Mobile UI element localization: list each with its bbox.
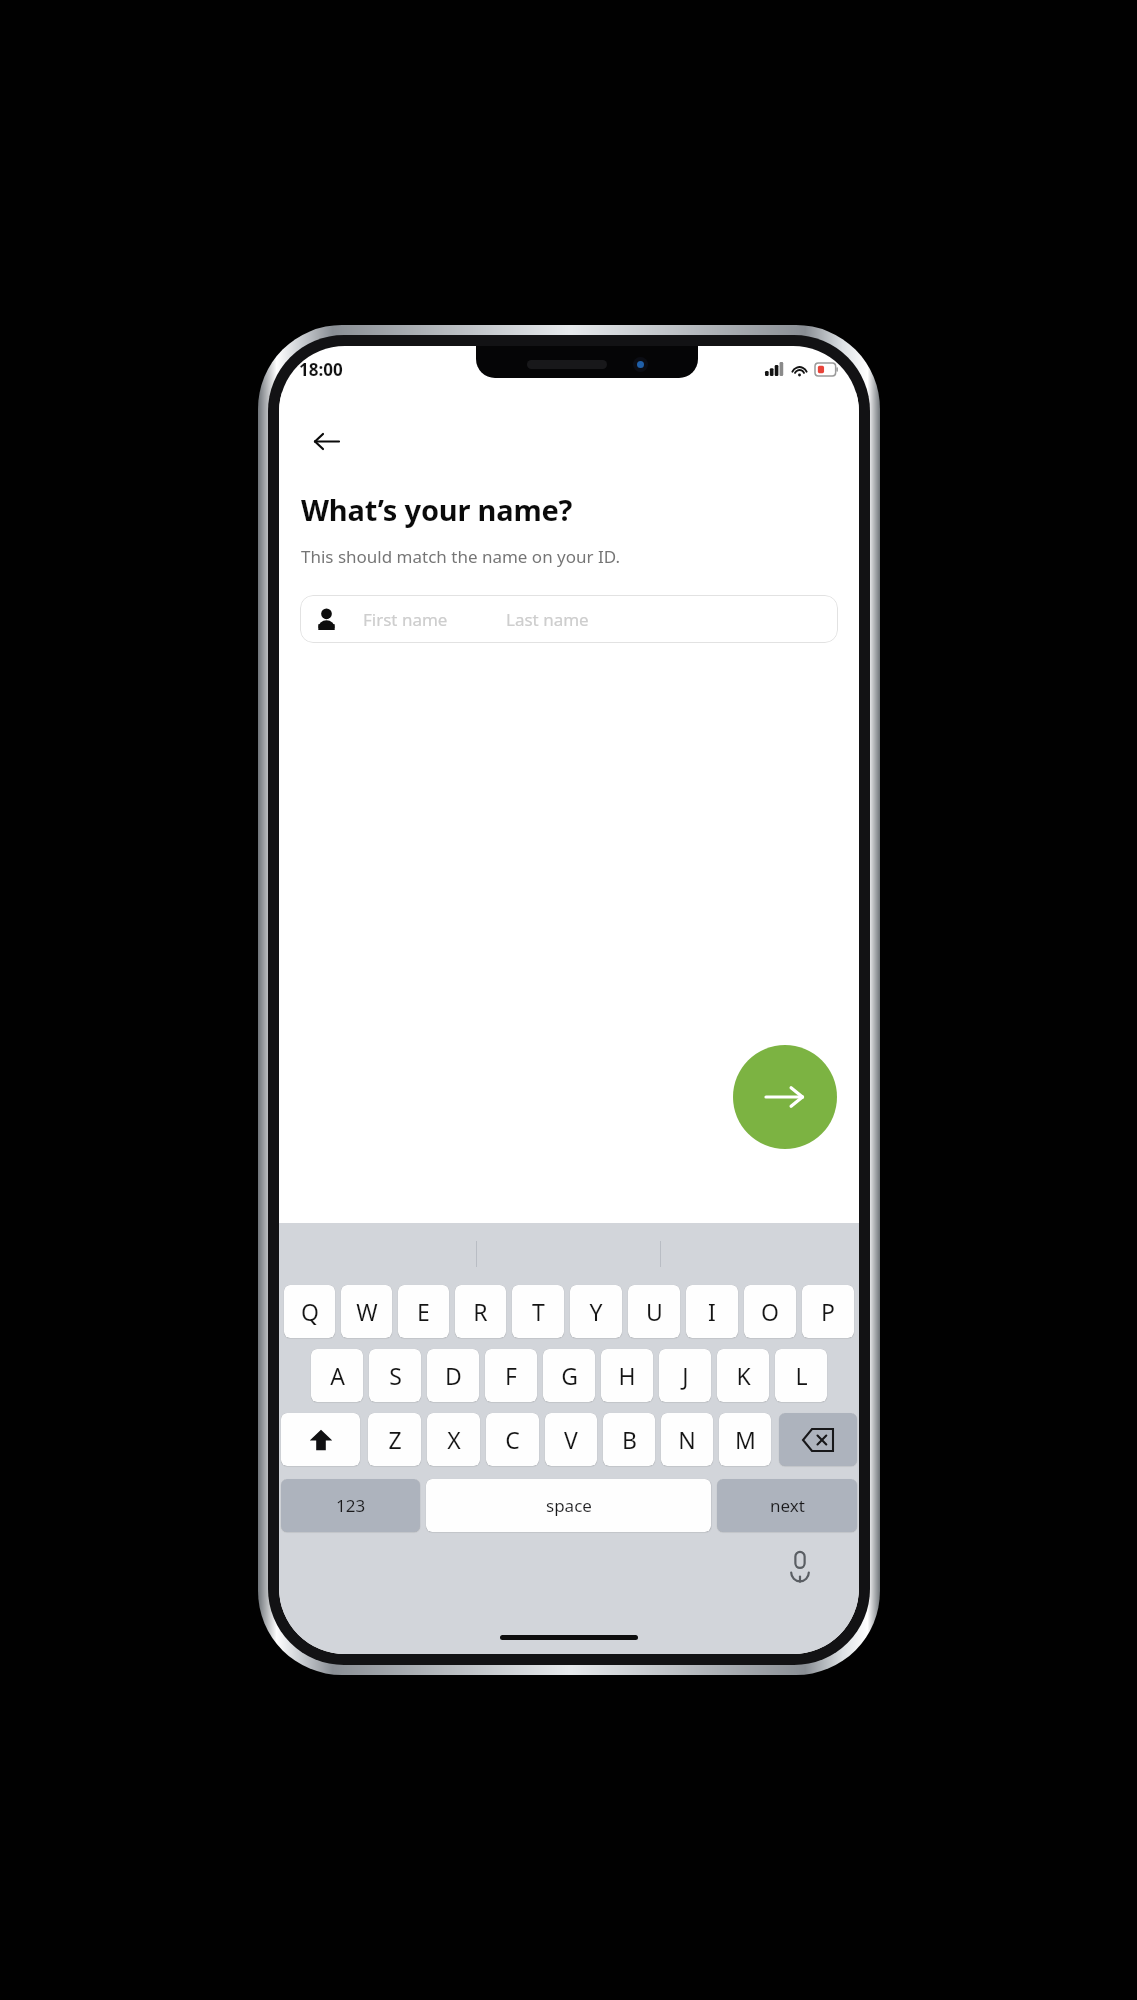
- button[interactable]: Backspace: [779, 1413, 857, 1466]
- staticText: space: [546, 1494, 592, 1517]
- button[interactable]: S: [369, 1349, 421, 1402]
- staticText: N: [678, 1424, 696, 1455]
- staticText: D: [445, 1360, 462, 1391]
- staticText: Last name: [506, 608, 589, 631]
- button[interactable]: F: [485, 1349, 537, 1402]
- staticText: This should match the name on your ID.: [301, 545, 621, 568]
- button[interactable]: First name: [300, 595, 838, 643]
- staticText: R: [473, 1296, 488, 1327]
- button[interactable]: next: [717, 1479, 857, 1532]
- staticText: L: [795, 1360, 808, 1391]
- button[interactable]: O: [744, 1285, 796, 1338]
- button[interactable]: P: [802, 1285, 854, 1338]
- staticText: F: [505, 1360, 517, 1391]
- staticText: J: [682, 1360, 689, 1391]
- staticText: E: [417, 1296, 430, 1327]
- staticText: K: [736, 1360, 751, 1391]
- button[interactable]: Continue: [733, 1045, 837, 1149]
- button[interactable]: D: [427, 1349, 479, 1402]
- staticText: W: [356, 1296, 378, 1327]
- button[interactable]: V: [545, 1413, 597, 1466]
- button[interactable]: Z: [368, 1413, 421, 1466]
- button[interactable]: Q: [284, 1285, 335, 1338]
- button[interactable]: space: [426, 1479, 711, 1532]
- button[interactable]: Voice input: [777, 1544, 823, 1590]
- staticText: T: [532, 1296, 545, 1327]
- staticText: 18:00: [299, 358, 343, 381]
- staticText: P: [821, 1296, 835, 1327]
- button[interactable]: B: [603, 1413, 655, 1466]
- button[interactable]: Shift: [281, 1413, 360, 1466]
- staticText: First name: [363, 608, 488, 631]
- button[interactable]: M: [719, 1413, 771, 1466]
- staticText: 123: [336, 1494, 366, 1517]
- staticText: C: [505, 1424, 520, 1455]
- button[interactable]: Y: [570, 1285, 622, 1338]
- staticText: What’s your name?: [301, 490, 573, 529]
- staticText: B: [622, 1424, 637, 1455]
- button[interactable]: G: [543, 1349, 595, 1402]
- button[interactable]: A: [311, 1349, 363, 1402]
- button[interactable]: C: [486, 1413, 539, 1466]
- staticText: Z: [388, 1424, 402, 1455]
- staticText: H: [618, 1360, 636, 1391]
- button[interactable]: T: [512, 1285, 564, 1338]
- button[interactable]: W: [341, 1285, 392, 1338]
- staticText: Q: [301, 1296, 319, 1327]
- staticText: M: [735, 1424, 756, 1455]
- staticText: V: [564, 1424, 578, 1455]
- button[interactable]: X: [427, 1413, 480, 1466]
- button[interactable]: L: [775, 1349, 827, 1402]
- staticText: next: [770, 1494, 805, 1517]
- staticText: X: [447, 1424, 461, 1455]
- staticText: O: [761, 1296, 779, 1327]
- staticText: Y: [589, 1296, 603, 1327]
- button[interactable]: K: [717, 1349, 769, 1402]
- button[interactable]: E: [398, 1285, 449, 1338]
- button[interactable]: Back: [301, 416, 351, 466]
- staticText: G: [561, 1360, 578, 1391]
- button[interactable]: 123: [281, 1479, 420, 1532]
- button[interactable]: I: [686, 1285, 738, 1338]
- staticText: U: [646, 1296, 663, 1327]
- staticText: A: [330, 1360, 345, 1391]
- staticText: I: [708, 1296, 716, 1327]
- button[interactable]: H: [601, 1349, 653, 1402]
- button[interactable]: N: [661, 1413, 713, 1466]
- staticText: S: [389, 1360, 402, 1391]
- button[interactable]: R: [455, 1285, 506, 1338]
- button[interactable]: U: [628, 1285, 680, 1338]
- button[interactable]: J: [659, 1349, 711, 1402]
